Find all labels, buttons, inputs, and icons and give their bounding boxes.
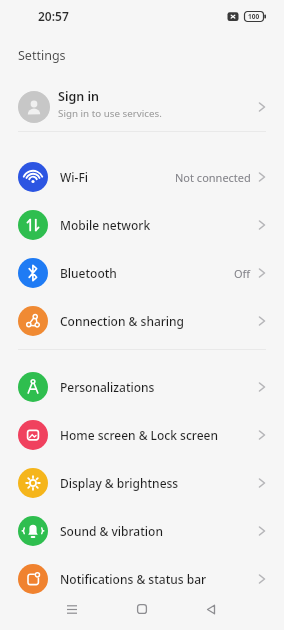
button[interactable] [64,601,80,617]
button[interactable]: Personalizations [0,363,284,411]
staticText: Off [234,266,251,281]
staticText: Home screen & Lock screen [60,427,218,443]
button[interactable]: Mobile network [0,201,284,249]
button[interactable]: Sign in [0,89,284,124]
button[interactable] [203,601,219,617]
staticText: Display & brightness [60,475,179,491]
staticText: Mobile network [60,217,151,233]
staticText: Connection & sharing [60,313,185,329]
button[interactable]: Bluetooth [0,249,284,297]
button[interactable]: Wi-Fi [0,153,284,201]
button[interactable]: Notifications & status bar [0,555,284,603]
staticText: Sign in [58,88,99,105]
staticText: Sound & vibration [60,523,163,539]
button[interactable]: Connection & sharing [0,297,284,345]
staticText: Sign in to use services. [58,107,162,120]
staticText: Wi-Fi [60,169,88,185]
staticText: Notifications & status bar [60,571,207,587]
staticText: 20:57 [38,8,69,24]
staticText: 100 [248,12,260,21]
button[interactable] [134,601,150,617]
button[interactable]: Home screen & Lock screen [0,411,284,459]
button[interactable]: Display & brightness [0,459,284,507]
staticText: Settings [18,47,66,64]
staticText: Bluetooth [60,265,117,281]
button[interactable]: Sound & vibration [0,507,284,555]
staticText: Not connected [175,170,251,185]
staticText: Personalizations [60,379,155,395]
